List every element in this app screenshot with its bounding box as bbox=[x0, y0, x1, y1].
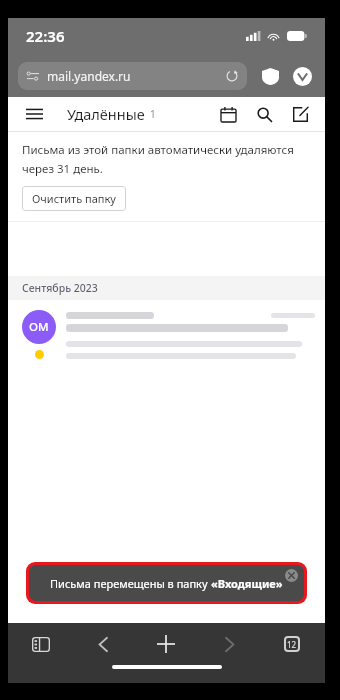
staticText: Письма из этой папки автоматически удаля… bbox=[22, 142, 294, 158]
staticText: OM bbox=[29, 319, 49, 335]
button[interactable]: Opera menu bbox=[289, 63, 315, 89]
button[interactable]: Tab count 12 bbox=[279, 631, 305, 657]
staticText: через 31 день. bbox=[22, 161, 103, 177]
staticText: Удалённые bbox=[67, 104, 145, 124]
staticText: Очистить папку bbox=[32, 191, 116, 206]
button[interactable]: New tab bbox=[153, 631, 179, 657]
button[interactable]: Close bbox=[285, 569, 298, 582]
staticText: 12 bbox=[287, 639, 297, 650]
staticText: «Входящие» bbox=[211, 576, 283, 591]
button[interactable]: Search bbox=[253, 103, 275, 125]
button[interactable]: mail.yandex.ru bbox=[18, 62, 247, 90]
staticText: Письма перемещены в папку bbox=[50, 576, 211, 591]
button[interactable]: Очистить папку bbox=[22, 186, 126, 211]
button[interactable]: Menu bbox=[22, 102, 46, 126]
button[interactable]: Tabs panel bbox=[28, 631, 54, 657]
staticText: mail.yandex.ru bbox=[47, 68, 131, 84]
button[interactable]: Shield bbox=[257, 63, 283, 89]
staticText: Сентябрь 2023 bbox=[22, 281, 98, 295]
staticText: 22:36 bbox=[26, 26, 65, 46]
button[interactable]: Back bbox=[90, 631, 116, 657]
button[interactable]: Письма перемещены в папку bbox=[29, 565, 304, 601]
button[interactable]: Calendar bbox=[217, 103, 239, 125]
button[interactable]: Forward bbox=[216, 631, 242, 657]
button[interactable]: OM bbox=[8, 300, 325, 359]
staticText: 1 bbox=[150, 107, 156, 121]
button[interactable]: Compose bbox=[289, 103, 311, 125]
